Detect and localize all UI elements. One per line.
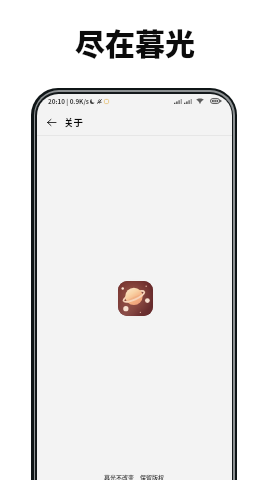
staticText: 关于 bbox=[64, 115, 84, 129]
staticText: 暮光不改变 保留版权 bbox=[104, 473, 165, 480]
staticText: 尽在暮光 bbox=[75, 20, 195, 63]
button[interactable]: Back bbox=[44, 115, 58, 129]
staticText: 20:10 | 0.9K/s bbox=[48, 97, 89, 106]
button[interactable]: App icon bbox=[118, 281, 153, 316]
